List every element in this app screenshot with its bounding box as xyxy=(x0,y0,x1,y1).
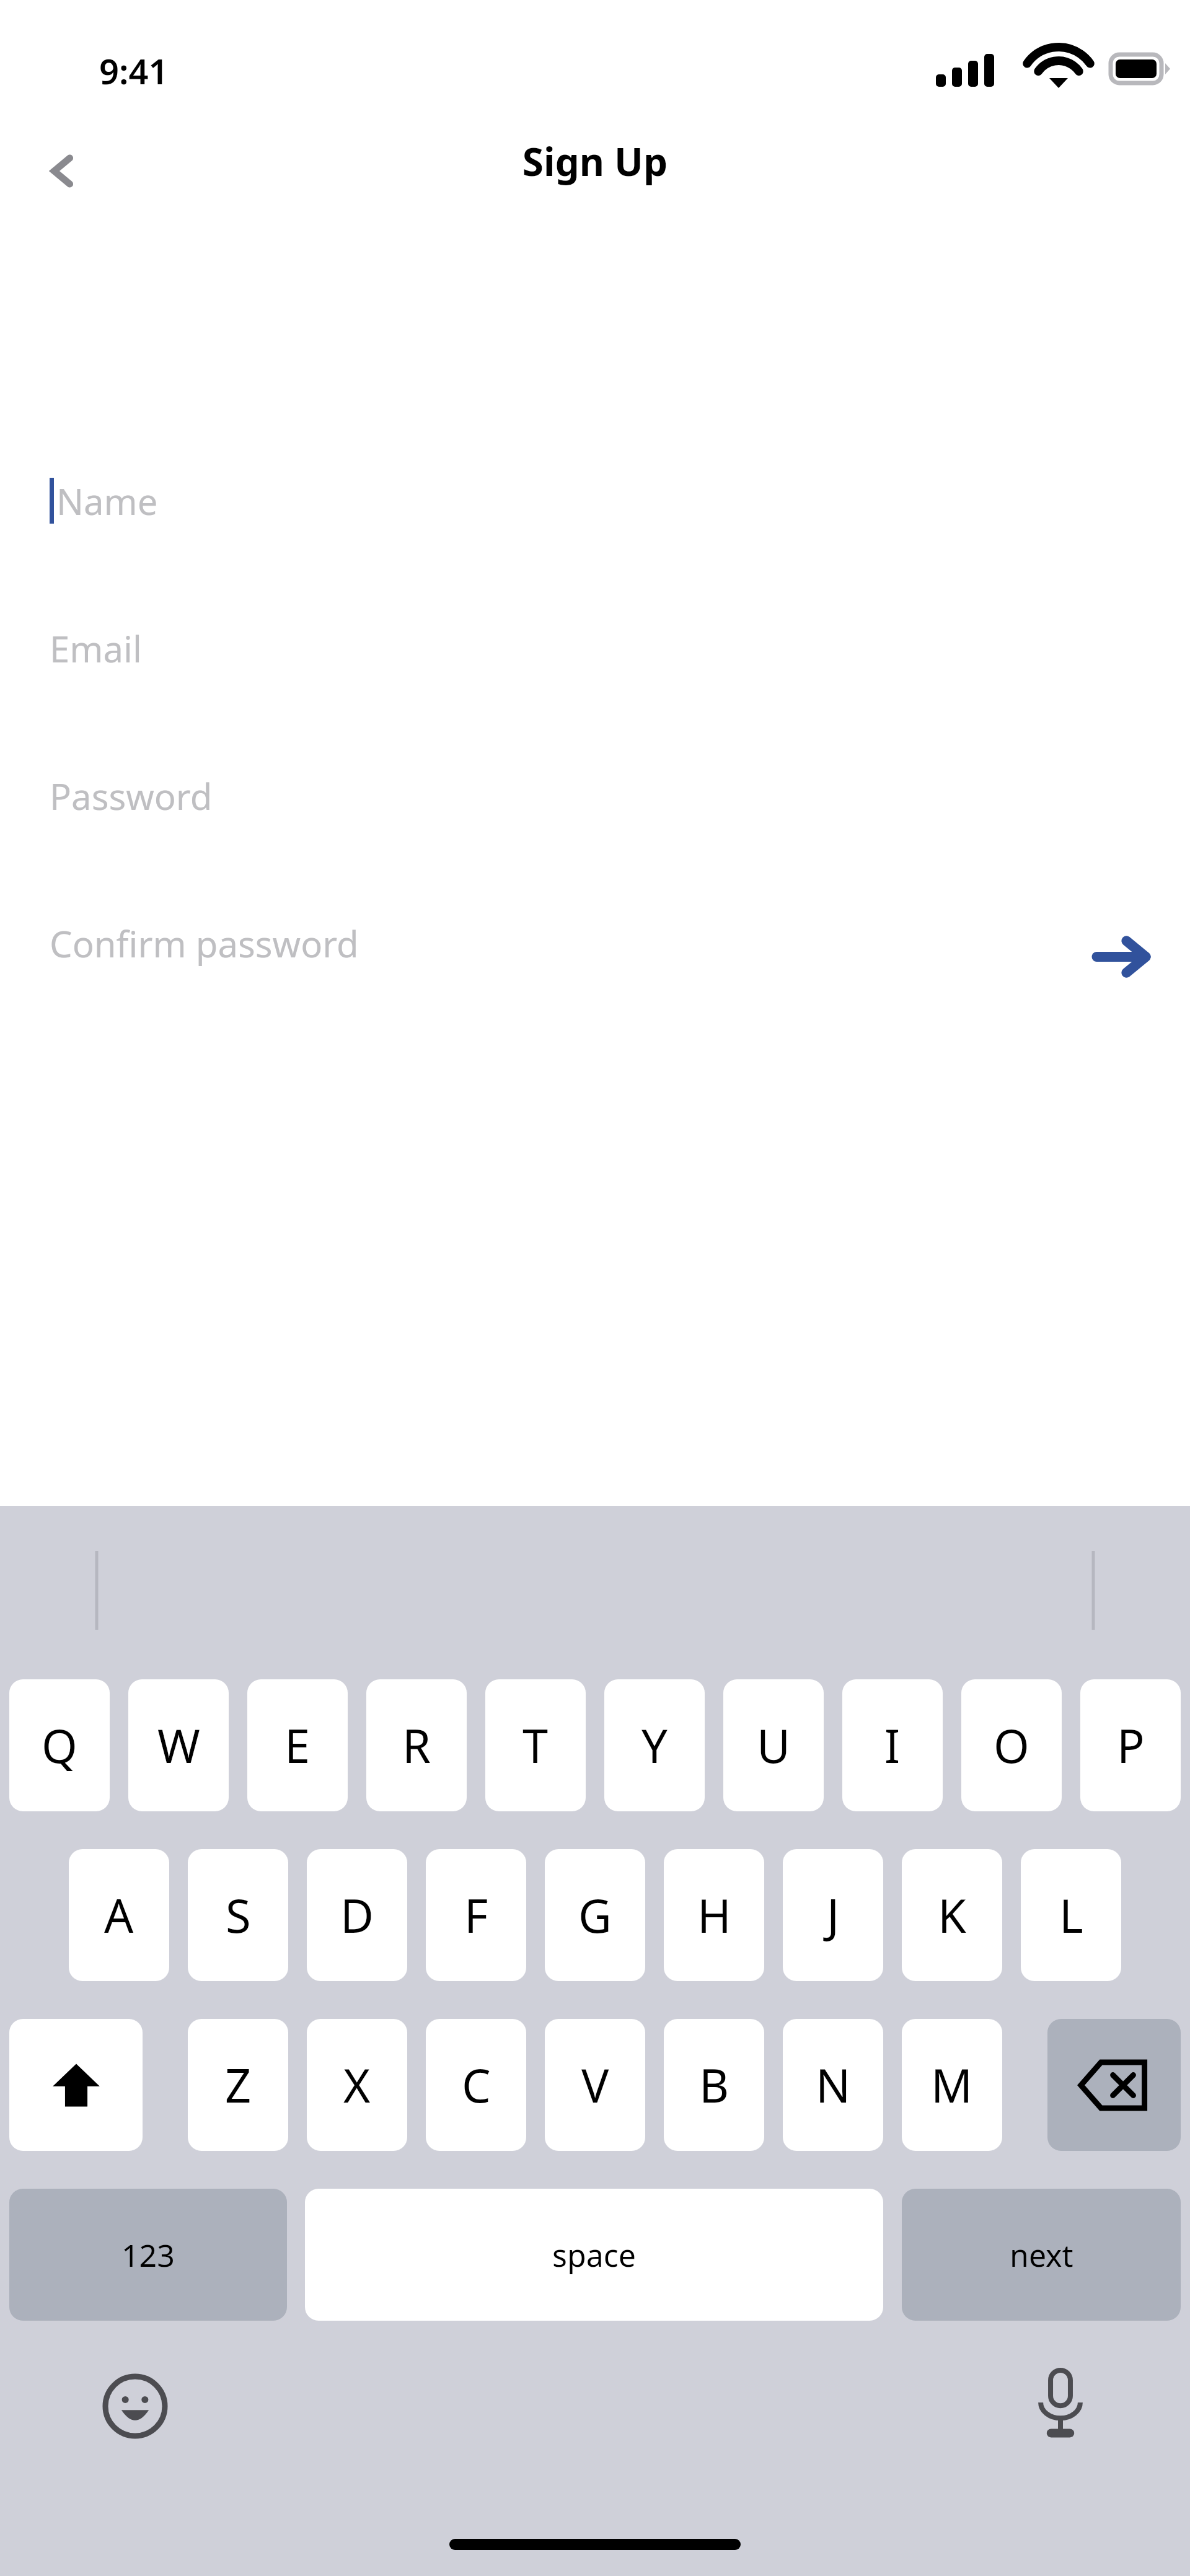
button[interactable]: T xyxy=(485,1679,586,1811)
staticText: S xyxy=(226,1884,251,1946)
button[interactable]: space xyxy=(305,2189,883,2321)
staticText: U xyxy=(757,1714,791,1777)
button[interactable]: 123 xyxy=(9,2189,287,2321)
button[interactable]: Emoji xyxy=(96,2367,174,2445)
button[interactable]: Voice input xyxy=(1021,2364,1100,2442)
staticText: V xyxy=(581,2054,609,2116)
staticText: 9:41 xyxy=(99,47,169,94)
button[interactable]: Confirm password xyxy=(0,913,1190,973)
staticText: Confirm password xyxy=(50,919,359,968)
button[interactable]: H xyxy=(664,1849,764,1981)
staticText: Z xyxy=(225,2054,252,2116)
button[interactable]: A xyxy=(69,1849,169,1981)
button[interactable]: C xyxy=(426,2019,526,2151)
button[interactable]: K xyxy=(902,1849,1002,1981)
button[interactable]: next xyxy=(902,2189,1181,2321)
button[interactable]: I xyxy=(842,1679,943,1811)
staticText: O xyxy=(994,1714,1029,1777)
button[interactable]: Continue xyxy=(1078,913,1165,1000)
staticText: Y xyxy=(641,1714,668,1777)
staticText: C xyxy=(462,2054,491,2116)
button[interactable]: O xyxy=(961,1679,1062,1811)
button[interactable]: M xyxy=(902,2019,1002,2151)
staticText: E xyxy=(284,1714,311,1777)
staticText: P xyxy=(1117,1714,1145,1777)
button[interactable]: L xyxy=(1021,1849,1121,1981)
staticText: R xyxy=(402,1714,431,1777)
button[interactable]: Shift xyxy=(9,2019,143,2151)
staticText: M xyxy=(931,2054,973,2116)
button[interactable]: Q xyxy=(9,1679,110,1811)
button[interactable]: G xyxy=(545,1849,645,1981)
button[interactable]: Name xyxy=(0,471,1190,530)
staticText: G xyxy=(578,1884,612,1946)
button[interactable]: B xyxy=(664,2019,764,2151)
staticText: 123 xyxy=(121,2234,175,2276)
staticText: T xyxy=(522,1714,549,1777)
button[interactable]: E xyxy=(247,1679,348,1811)
staticText: B xyxy=(699,2054,729,2116)
button[interactable]: F xyxy=(426,1849,526,1981)
button[interactable]: X xyxy=(307,2019,407,2151)
staticText: Sign Up xyxy=(0,135,1190,187)
staticText: N xyxy=(816,2054,851,2116)
button[interactable]: Email xyxy=(0,618,1190,678)
staticText: K xyxy=(938,1884,966,1946)
staticText: A xyxy=(104,1884,134,1946)
button[interactable]: V xyxy=(545,2019,645,2151)
button[interactable]: Y xyxy=(604,1679,705,1811)
staticText: next xyxy=(1010,2234,1073,2276)
staticText: I xyxy=(884,1714,901,1777)
button[interactable]: Back xyxy=(22,131,102,211)
staticText: X xyxy=(343,2054,371,2116)
button[interactable]: U xyxy=(723,1679,824,1811)
staticText: Name xyxy=(56,477,158,525)
button[interactable]: W xyxy=(128,1679,229,1811)
staticText: F xyxy=(464,1884,488,1946)
staticText: Password xyxy=(50,771,213,820)
staticText: L xyxy=(1059,1884,1083,1946)
button[interactable]: P xyxy=(1080,1679,1181,1811)
button[interactable]: D xyxy=(307,1849,407,1981)
button[interactable]: Backspace xyxy=(1047,2019,1181,2151)
staticText: Q xyxy=(42,1714,77,1777)
staticText: J xyxy=(827,1884,840,1946)
staticText: H xyxy=(697,1884,731,1946)
staticText: space xyxy=(552,2234,636,2276)
button[interactable]: N xyxy=(783,2019,883,2151)
button[interactable]: S xyxy=(188,1849,288,1981)
button[interactable]: J xyxy=(783,1849,883,1981)
button[interactable]: R xyxy=(366,1679,467,1811)
button[interactable]: Password xyxy=(0,766,1190,825)
staticText: Email xyxy=(50,624,142,673)
button[interactable]: Z xyxy=(188,2019,288,2151)
staticText: W xyxy=(157,1714,200,1777)
staticText: D xyxy=(340,1884,374,1946)
